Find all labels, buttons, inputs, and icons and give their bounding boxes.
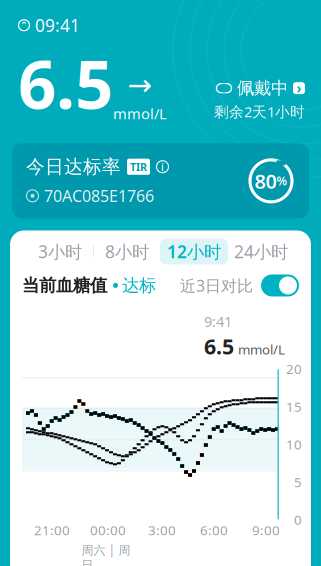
staticText: mmol/L [238,341,285,358]
staticText: 9:00 [252,521,280,539]
staticText: ⌃ [20,20,28,30]
button[interactable]: 近3日对比开关 [261,274,299,296]
staticText: 0 [294,511,302,528]
button[interactable]: 12小时 [160,238,228,264]
staticText: mmol/L [113,104,167,123]
staticText: 00:00 [90,521,126,539]
staticText: 5 [294,473,302,491]
staticText: 09:41 [35,14,80,37]
staticText: 9:41 [204,311,232,331]
button[interactable]: 3小时 [27,238,93,264]
staticText: i [161,160,164,174]
staticText: 70AC085E1766 [44,185,154,206]
staticText: → [127,68,152,102]
staticText: % [276,173,287,189]
button[interactable]: 24小时 [228,238,294,264]
staticText: 3:00 [148,521,176,539]
staticText: 周六 | 周日 [81,542,130,566]
staticText: 6.5 [204,332,234,360]
staticText: 24小时 [234,240,288,263]
staticText: TIR [130,160,147,174]
staticText: 15 [286,398,302,415]
staticText: 6:00 [200,521,228,539]
staticText: › [296,79,301,97]
staticText: 佩戴中 [237,77,288,99]
staticText: 80 [254,168,276,194]
staticText: 8小时 [105,240,149,263]
button[interactable]: 今日达标率 [12,143,309,218]
staticText: 达标 [122,275,156,296]
staticText: 近3日对比 [180,275,253,296]
staticText: 当前血糖值 [22,275,107,296]
button[interactable]: 佩戴中 [216,77,305,99]
staticText: 20 [286,360,302,378]
staticText: 3小时 [38,240,82,263]
staticText: 21:00 [34,521,70,539]
staticText: 今日达标率 [26,155,121,178]
staticText: 6.5 [18,39,113,127]
staticText: 12小时 [167,240,221,263]
button[interactable]: 8小时 [94,238,160,264]
staticText: 剩余2天1小时 [214,102,305,121]
staticText: 10 [286,435,302,453]
